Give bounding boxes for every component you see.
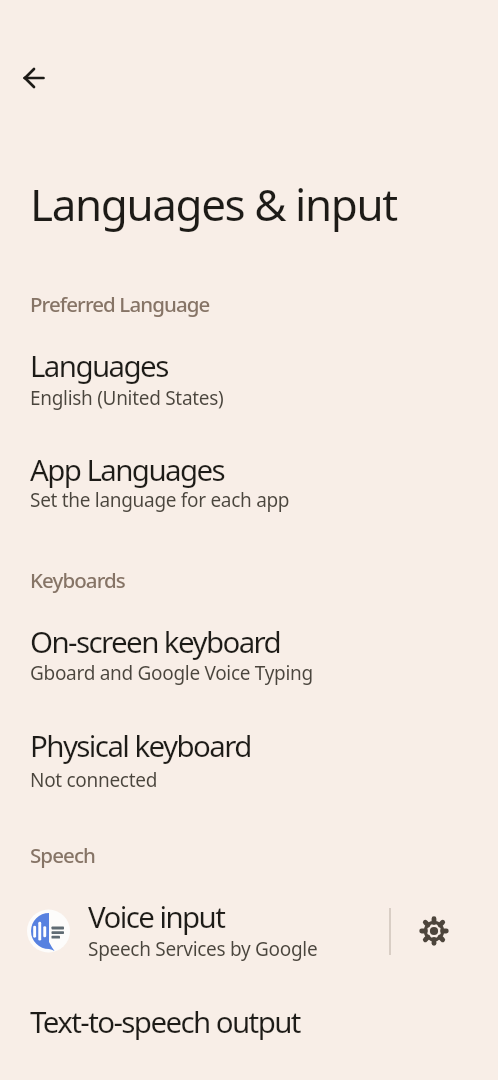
- staticText: Physical keyboard: [30, 725, 251, 765]
- button[interactable]: Voice input: [0, 885, 498, 981]
- staticText: Speech: [30, 841, 96, 869]
- button[interactable]: Text-to-speech output: [0, 990, 498, 1080]
- staticText: Voice input: [88, 896, 225, 936]
- staticText: App Languages: [30, 449, 225, 489]
- button[interactable]: Languages: [0, 334, 498, 430]
- staticText: Languages & input: [30, 174, 397, 234]
- button[interactable]: On-screen keyboard: [0, 610, 498, 706]
- staticText: Set the language for each app: [30, 487, 290, 513]
- staticText: Text-to-speech output: [30, 1001, 300, 1041]
- staticText: On-screen keyboard: [30, 621, 281, 661]
- staticText: Keyboards: [30, 566, 125, 594]
- staticText: Speech Services by Google: [88, 936, 318, 962]
- staticText: Preferred Language: [30, 290, 210, 318]
- staticText: English (United States): [30, 385, 224, 411]
- button[interactable]: App Languages: [0, 438, 498, 534]
- button[interactable]: [10, 54, 58, 102]
- staticText: Not connected: [30, 767, 158, 793]
- staticText: Languages: [30, 345, 168, 385]
- button[interactable]: Physical keyboard: [0, 714, 498, 810]
- button[interactable]: [406, 903, 462, 959]
- staticText: Gboard and Google Voice Typing: [30, 660, 313, 686]
